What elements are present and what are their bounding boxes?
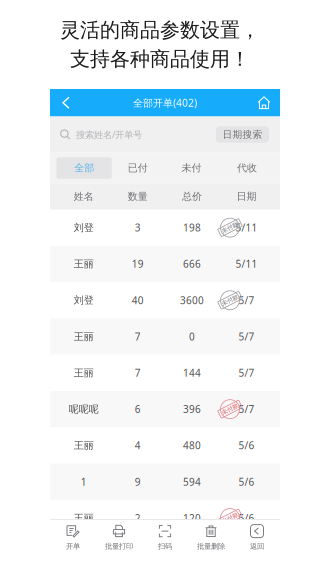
staticText: 3	[135, 221, 141, 234]
staticText: 全部	[74, 162, 94, 174]
staticText: 120	[183, 511, 201, 525]
staticText: 6	[135, 402, 141, 416]
staticText: 3600	[180, 293, 204, 307]
button[interactable]: 扫码	[142, 520, 188, 555]
staticText: 5/7	[238, 402, 254, 416]
staticText: 灵活的商品参数设置，	[60, 17, 260, 43]
staticText: 刘登	[74, 294, 94, 307]
staticText: 4	[135, 439, 141, 452]
staticText: 王丽	[74, 258, 94, 270]
staticText: 扫码	[158, 542, 172, 551]
staticText: 0	[189, 330, 195, 343]
staticText: 1	[81, 475, 87, 488]
staticText: 数量	[128, 190, 148, 203]
staticText: 代收	[237, 162, 257, 174]
staticText: 9	[135, 475, 141, 488]
button[interactable]: Back	[55, 89, 77, 116]
staticText: 开单	[66, 542, 80, 551]
staticText: 日期	[236, 190, 256, 203]
staticText: 王丽	[74, 330, 94, 343]
button[interactable]: 代收	[223, 157, 271, 179]
staticText: 呢呢呢	[69, 403, 99, 415]
staticText: 480	[183, 439, 201, 452]
staticText: 5/11	[235, 221, 257, 234]
staticText: 返回	[250, 542, 264, 551]
staticText: 19	[132, 257, 144, 271]
button[interactable]: 开单	[50, 520, 96, 555]
button[interactable]: 未付	[167, 157, 215, 179]
staticText: 396	[183, 402, 201, 416]
staticText: 5/7	[238, 293, 254, 307]
staticText: 批量删除	[197, 542, 225, 551]
staticText: 未付款	[221, 297, 239, 304]
staticText: 5/6	[238, 475, 254, 488]
staticText: 支持各种商品使用！	[70, 46, 250, 72]
staticText: 未付款	[221, 514, 239, 522]
staticText: 姓名	[74, 190, 94, 203]
staticText: 7	[135, 366, 141, 380]
staticText: 未付	[181, 162, 201, 174]
staticText: 198	[183, 221, 201, 234]
button[interactable]: 日期搜索	[216, 126, 269, 143]
button[interactable]: 全部	[56, 157, 112, 179]
staticText: 未付款	[221, 224, 239, 231]
staticText: 王丽	[74, 439, 94, 452]
staticText: 王丽	[74, 512, 94, 524]
staticText: 5/11	[235, 257, 257, 271]
staticText: 5/6	[238, 439, 254, 452]
button[interactable]: 批量打印	[96, 520, 142, 555]
staticText: 5/7	[238, 366, 254, 380]
button[interactable]: 返回	[234, 520, 280, 555]
staticText: 总价	[182, 190, 202, 203]
staticText: 40	[132, 293, 144, 307]
staticText: 王丽	[74, 367, 94, 379]
staticText: 5/7	[238, 330, 254, 343]
staticText: 594	[183, 475, 201, 488]
staticText: 批量打印	[105, 542, 133, 551]
staticText: 5/6	[238, 511, 254, 525]
staticText: 全部开单(402)	[133, 96, 197, 109]
staticText: 搜索姓名/开单号	[76, 128, 142, 141]
staticText: 已付	[128, 162, 148, 174]
staticText: 未付款	[221, 405, 239, 413]
staticText: 刘登	[74, 221, 94, 234]
staticText: 666	[183, 257, 201, 271]
button[interactable]: 已付	[114, 157, 162, 179]
button[interactable]: Home	[253, 89, 275, 116]
staticText: 7	[135, 330, 141, 343]
staticText: 2	[135, 511, 141, 525]
button[interactable]: 批量删除	[188, 520, 234, 555]
staticText: 日期搜索	[222, 128, 262, 141]
staticText: 144	[183, 366, 201, 380]
